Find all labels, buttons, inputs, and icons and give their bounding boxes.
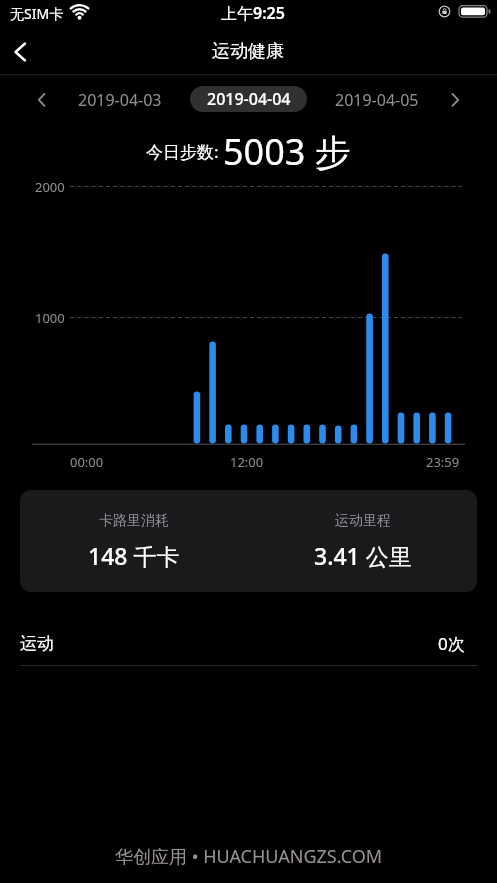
staticText: 运动健康 [212, 40, 284, 63]
button[interactable] [4, 36, 40, 68]
staticText: 卡路里消耗 [99, 512, 169, 530]
staticText: 0次 [438, 632, 465, 655]
staticText: 2019-04-03 [78, 89, 162, 111]
staticText: 运动里程 [335, 512, 391, 530]
staticText: 1000 [35, 309, 65, 325]
staticText: 华创应用 • HUACHUANGZS.COM [115, 844, 383, 869]
button[interactable]: 2019-04-05 [327, 85, 427, 115]
button[interactable]: 2019-04-03 [70, 85, 170, 115]
button[interactable]: 运动 [0, 621, 497, 665]
staticText: 5003 步 [223, 127, 351, 175]
staticText: 3.41 公里 [314, 540, 412, 571]
button[interactable] [443, 84, 467, 114]
button[interactable]: 卡路里消耗 [20, 490, 248, 592]
staticText: 运动 [20, 633, 54, 654]
staticText: 2019-04-05 [335, 89, 419, 111]
staticText: 23:59 [426, 453, 460, 469]
staticText: 上午9:25 [221, 2, 285, 24]
button[interactable]: 运动里程 [248, 490, 477, 592]
button[interactable] [30, 84, 54, 114]
staticText: 2000 [35, 178, 65, 194]
staticText: 今日步数: [146, 140, 223, 163]
staticText: 12:00 [230, 453, 264, 469]
button[interactable]: 2019-04-04 [190, 86, 307, 112]
staticText: 无SIM卡 [10, 4, 64, 23]
staticText: 2019-04-04 [207, 88, 291, 110]
staticText: 148 千卡 [88, 540, 180, 571]
staticText: 00:00 [70, 453, 104, 469]
